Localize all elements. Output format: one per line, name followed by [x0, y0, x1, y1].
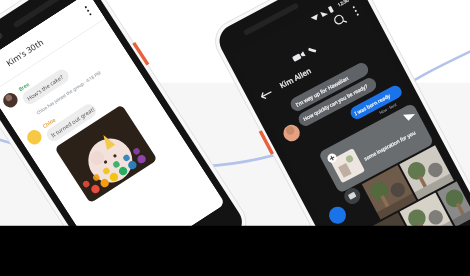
- button[interactable]: Google Messages promo artwork: [0, 0, 470, 276]
